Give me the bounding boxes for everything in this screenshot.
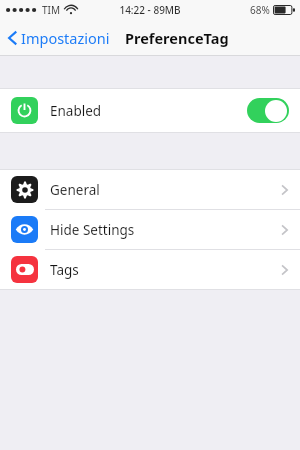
staticText: Tags (50, 261, 281, 279)
staticText: 68% (250, 3, 270, 17)
staticText: Impostazioni (21, 28, 110, 48)
button[interactable]: Hide Settings (0, 210, 300, 249)
button[interactable]: Enabled (0, 89, 300, 132)
button[interactable]: Impostazioni (5, 24, 113, 52)
staticText: General (50, 181, 281, 199)
staticText: 14:22 - 89MB (119, 3, 181, 17)
button[interactable]: Tags (0, 250, 300, 289)
staticText: TIM (42, 3, 61, 17)
staticText: PreferenceTag (125, 28, 229, 48)
staticText: Enabled (50, 102, 241, 120)
button[interactable]: Enabled toggle, on (247, 98, 289, 123)
staticText: Hide Settings (50, 221, 281, 239)
button[interactable]: General (0, 170, 300, 209)
